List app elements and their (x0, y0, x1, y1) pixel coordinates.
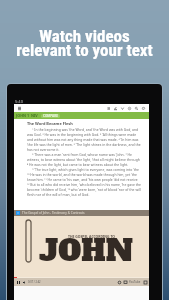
staticText: ¹² But to all who did receive him, ʼwho … (27, 182, 141, 187)
staticText: ⁸ He was not the light, but came to bear… (27, 162, 129, 167)
staticText: was God. ² He was in the beginning with … (27, 132, 141, 137)
staticText: The Word Became Flesh (27, 121, 73, 126)
button[interactable]: Fullscreen (143, 280, 147, 284)
button[interactable]: Search (133, 104, 140, 112)
staticText: and without him was not any thing made t… (27, 137, 141, 142)
staticText: has not overcome it. (27, 147, 60, 152)
button[interactable]: Settings (117, 280, 121, 284)
button[interactable]: THE GOSPEL ACCORDING TO (14, 216, 149, 286)
button[interactable]: Cast (123, 280, 127, 284)
button[interactable]: Pause (16, 280, 20, 284)
staticText: YouTube (129, 280, 141, 284)
button[interactable]: Menu (17, 104, 22, 112)
staticText: Watch videos relevant to your text (16, 26, 153, 60)
button[interactable]: Reading plans (105, 104, 112, 112)
staticText: know him. ¹¹ He came to ʼhis own, and ʼh… (27, 177, 141, 182)
button[interactable]: COMPARE (41, 114, 60, 118)
button[interactable]: The Gospel of John - Testimony & Contras… (14, 210, 149, 216)
button[interactable]: Notes (140, 104, 147, 112)
button[interactable]: Bookmark (119, 104, 126, 112)
staticText: witness, to bear witness about ʼthe ligh… (27, 157, 141, 162)
staticText: The Gospel of John - Testimony & Contras… (22, 211, 85, 215)
staticText: ʼthe life was the light of men. ⁵ ʼThe l… (27, 142, 141, 147)
button[interactable]: Mute (22, 280, 26, 284)
staticText: ⁹ ʼThe true light, which gives light to … (27, 167, 141, 172)
staticText: ¹⁰ He was in the world, and the world wa… (27, 172, 141, 177)
button[interactable]: JOHN 1 NIV (16, 113, 38, 118)
staticText: JOHN 1 NIV (16, 113, 38, 118)
staticText: become ʼchildren of God, ¹³ who ʼwere bo… (27, 187, 141, 192)
staticText: COMPARE (43, 114, 58, 118)
staticText: ¹ In the beginning was ʼthe Word, and ʼt… (27, 127, 141, 132)
staticText: 0:07 / 2:42 (28, 280, 41, 284)
staticText: flesh nor of the will of man, but of God… (27, 192, 90, 197)
staticText: JOHN (39, 231, 133, 271)
staticText: ⁶ There was a man ʼsent from God, whose … (27, 152, 141, 157)
button[interactable]: Settings (126, 104, 133, 112)
button[interactable]: Highlight (112, 104, 119, 112)
staticText: THE GOSPEL ACCORDING TO (68, 234, 115, 239)
staticText: 5:40 (15, 99, 23, 104)
